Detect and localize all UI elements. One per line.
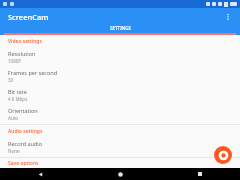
staticText: ScreenCam bbox=[8, 12, 49, 22]
button[interactable]: SETTINGS bbox=[0, 25, 240, 35]
staticText: Frames per second bbox=[8, 69, 58, 76]
button[interactable]: Bit rate bbox=[0, 86, 240, 105]
staticText: 4.6 Mbps bbox=[8, 96, 28, 102]
staticText: Save options bbox=[8, 160, 39, 167]
staticText: Auto bbox=[8, 115, 19, 121]
button[interactable]: Record audio bbox=[0, 138, 240, 157]
button[interactable]: Recent apps bbox=[160, 168, 240, 180]
staticText: None bbox=[8, 148, 20, 154]
button[interactable]: More options bbox=[220, 9, 236, 25]
button[interactable]: Start recording bbox=[214, 146, 232, 164]
staticText: Record audio bbox=[8, 140, 43, 147]
staticText: 30 bbox=[8, 77, 14, 83]
button[interactable]: Frames per second bbox=[0, 67, 240, 86]
staticText: Bit rate bbox=[8, 88, 27, 95]
staticText: SETTINGS bbox=[110, 25, 131, 31]
staticText: 1080P bbox=[8, 58, 22, 64]
staticText: Audio settings bbox=[8, 128, 43, 135]
button[interactable]: Resolution bbox=[0, 48, 240, 67]
button[interactable]: Orientation bbox=[0, 105, 240, 124]
staticText: Resolution bbox=[8, 50, 36, 57]
staticText: Orientation bbox=[8, 107, 38, 114]
staticText: Video settings bbox=[8, 38, 42, 45]
button[interactable]: Back bbox=[0, 168, 80, 180]
button[interactable]: Home bbox=[80, 168, 160, 180]
